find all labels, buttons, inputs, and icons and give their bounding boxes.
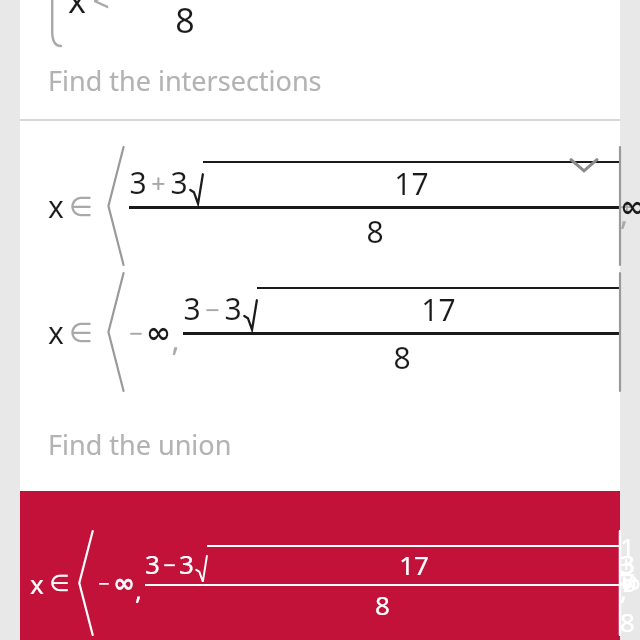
staticText: ∈ [69,191,93,222]
button[interactable]: x [20,121,620,491]
staticText: − [129,316,143,349]
staticText: 8 [393,337,411,378]
staticText: ∈ [49,570,70,597]
staticText: 3 [224,288,242,329]
staticText: 3 [183,288,201,329]
staticText: − [98,570,110,597]
staticText: , [135,572,142,607]
staticText: 3 [145,546,160,581]
staticText: x [30,566,44,601]
staticText: 17 [421,289,456,330]
button[interactable]: x [20,0,620,119]
button[interactable]: x [20,491,620,640]
staticText: x [48,312,64,353]
staticText: 3 [170,162,188,203]
staticText: 3 [129,162,147,203]
staticText: ∞ [113,568,135,598]
staticText: < [92,0,110,21]
staticText: , [171,319,180,360]
staticText: 8 [375,587,390,622]
staticText: 17 [399,547,429,582]
staticText: 17 [394,163,429,204]
staticText: Find the union [48,426,232,463]
staticText: Find the intersections [48,62,322,99]
staticText: x [48,186,64,227]
staticText: − [163,549,176,579]
staticText: 8 [366,211,384,252]
staticText: − [205,292,220,326]
staticText: x [68,0,86,23]
button[interactable]: Collapse step [560,141,608,189]
staticText: 3 [179,546,194,581]
staticText: + [151,166,166,200]
staticText: 8 [175,0,195,43]
staticText: ∞ [146,315,171,350]
staticText: ∈ [69,317,93,348]
